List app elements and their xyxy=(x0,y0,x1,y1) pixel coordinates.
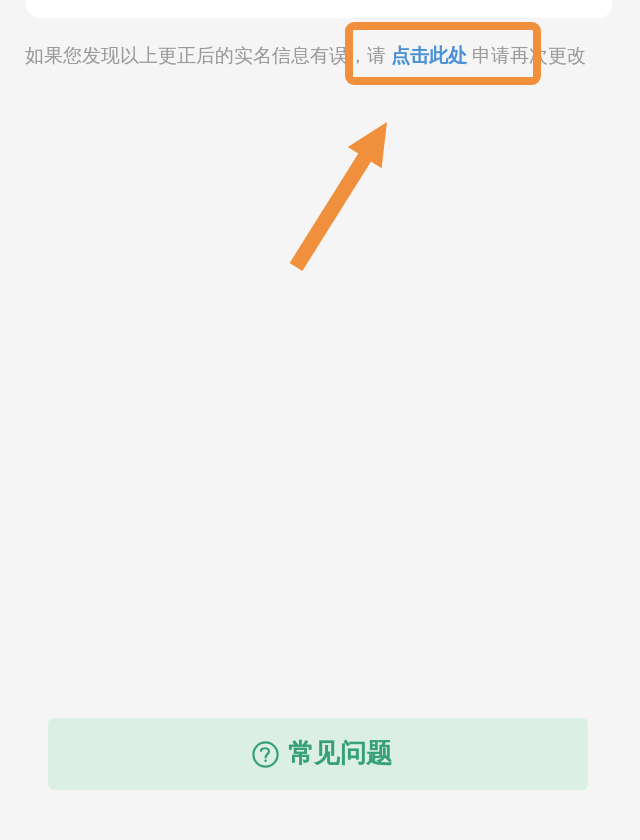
staticText: 如果您发现以上更正后的实名信息有误，请 点击此处 申请再次更改 xyxy=(25,42,586,68)
other: 帮助 xyxy=(252,741,279,768)
staticText: 常见问题 xyxy=(288,737,392,770)
button[interactable]: 帮助 xyxy=(48,718,588,790)
